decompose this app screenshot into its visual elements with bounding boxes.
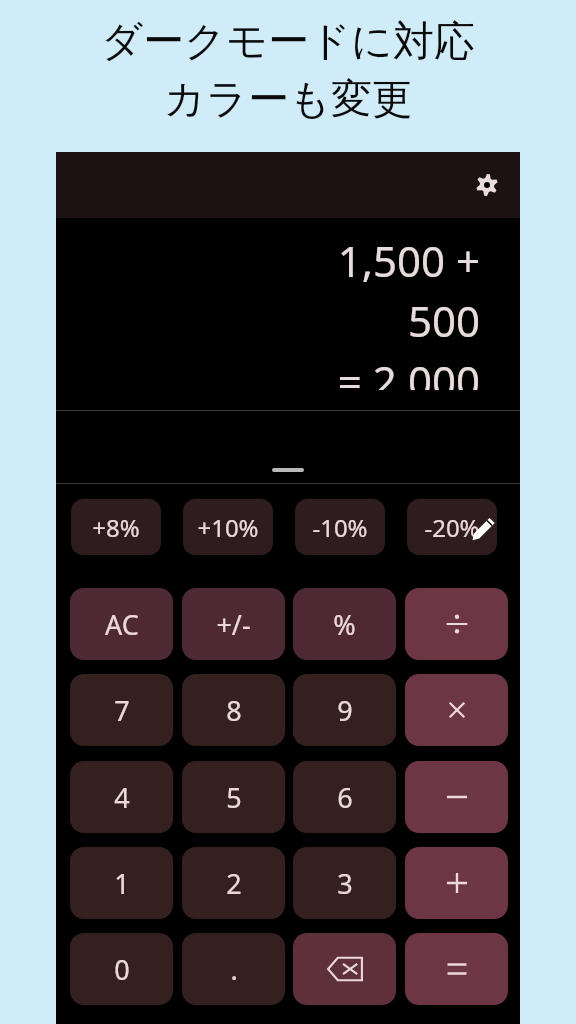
staticText: 6 — [337, 779, 353, 816]
staticText: 9 — [337, 692, 353, 729]
button[interactable]: 2 — [182, 847, 285, 919]
button[interactable]: multiply — [405, 674, 508, 746]
button[interactable]: 0 — [70, 933, 173, 1005]
button[interactable]: 4 — [70, 761, 173, 833]
staticText: 500 — [407, 292, 480, 349]
staticText: 3 — [337, 865, 353, 902]
staticText: 1,500 + — [337, 232, 480, 289]
button[interactable]: 9 — [293, 674, 396, 746]
button[interactable]: 8 — [182, 674, 285, 746]
button[interactable]: 3 — [293, 847, 396, 919]
staticText: 4 — [114, 779, 130, 816]
button[interactable]: +10% — [183, 499, 273, 555]
staticText: 8 — [226, 692, 242, 729]
staticText: ダークモードに対応 — [101, 16, 475, 68]
staticText: = 2,000 — [337, 352, 480, 390]
button[interactable]: -10% — [295, 499, 385, 555]
staticText: AC — [105, 606, 139, 643]
button[interactable]: minus — [405, 761, 508, 833]
button[interactable] — [272, 468, 304, 472]
button[interactable]: AC — [70, 588, 173, 660]
button[interactable]: plus — [405, 847, 508, 919]
button[interactable]: 5 — [182, 761, 285, 833]
staticText: -10% — [312, 511, 368, 544]
staticText: . — [230, 951, 238, 988]
button[interactable]: Settings — [467, 165, 507, 205]
button[interactable]: 6 — [293, 761, 396, 833]
staticText: 2 — [226, 865, 242, 902]
button[interactable]: . — [182, 933, 285, 1005]
staticText: % — [333, 606, 356, 643]
button[interactable]: +8% — [71, 499, 161, 555]
button[interactable]: -20% — [407, 499, 497, 555]
button[interactable]: divide — [405, 588, 508, 660]
staticText: +8% — [92, 511, 140, 544]
button[interactable]: +/- — [182, 588, 285, 660]
button[interactable]: equals — [405, 933, 508, 1005]
staticText: 0 — [114, 951, 130, 988]
staticText: +10% — [197, 511, 259, 544]
button[interactable]: 7 — [70, 674, 173, 746]
staticText: -20% — [424, 511, 480, 544]
button[interactable]: Backspace — [293, 933, 396, 1005]
staticText: カラーも変更 — [164, 74, 413, 126]
button[interactable]: % — [293, 588, 396, 660]
staticText: 1 — [114, 865, 130, 902]
button[interactable]: 1 — [70, 847, 173, 919]
staticText: 5 — [226, 779, 242, 816]
staticText: 7 — [114, 692, 130, 729]
button[interactable]: Edit — [466, 511, 500, 545]
staticText: +/- — [216, 606, 251, 643]
